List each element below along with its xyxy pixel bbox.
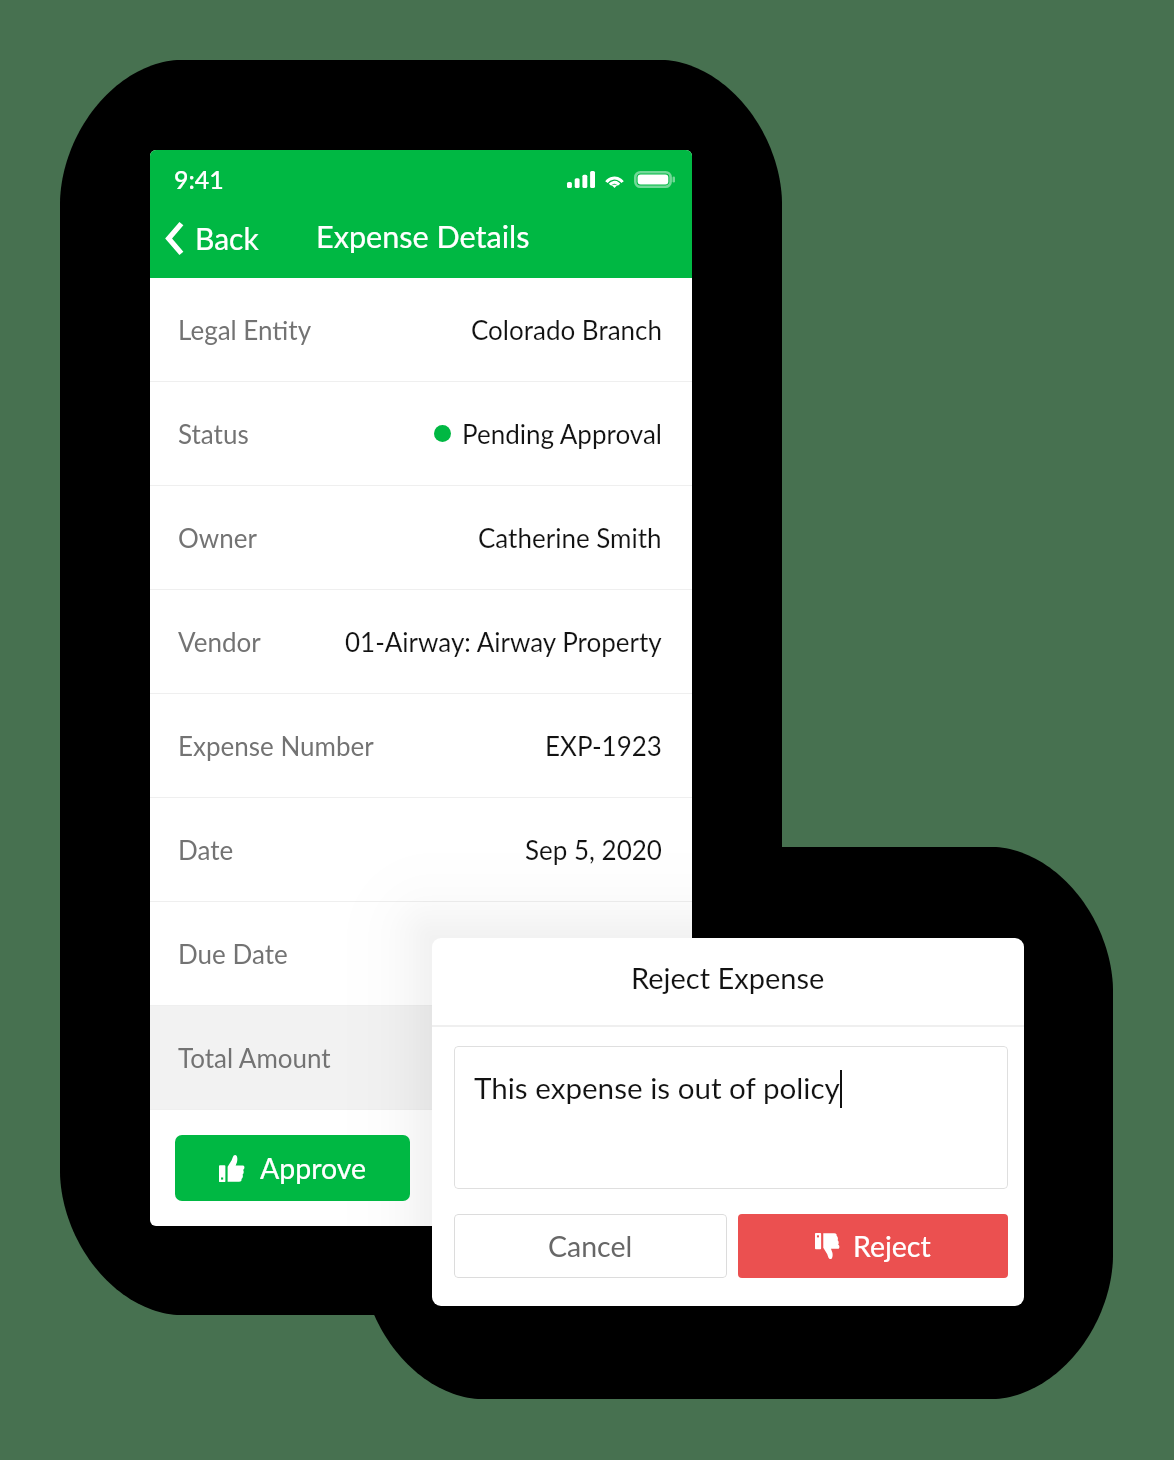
staticText: Total Amount: [178, 1042, 331, 1073]
staticText: Sep 20, 2020: [509, 938, 662, 969]
button[interactable]: This expense is out of policy: [454, 1046, 1008, 1189]
staticText: 9:41: [174, 164, 224, 194]
button[interactable]: Status: [150, 382, 692, 485]
staticText: Status: [178, 418, 249, 449]
staticText: Vendor: [178, 626, 261, 657]
staticText: Catherine Smith: [478, 522, 662, 553]
staticText: Cancel: [548, 1229, 633, 1263]
staticText: EXP-1923: [545, 730, 662, 761]
button[interactable]: Expense Number: [150, 694, 692, 797]
staticText: Back: [195, 220, 259, 256]
button[interactable]: Owner: [150, 486, 692, 589]
button[interactable]: Cancel: [454, 1214, 727, 1278]
staticText: Colorado Branch: [471, 314, 662, 345]
staticText: 01-Airway: Airway Property: [345, 626, 662, 657]
button[interactable]: Approve: [175, 1135, 410, 1201]
button[interactable]: Due Date: [150, 902, 692, 1005]
staticText: Pending Approval: [462, 418, 662, 449]
staticText: $1,200.00: [544, 1042, 662, 1073]
staticText: Due Date: [178, 938, 288, 969]
staticText: This expense is out of policy: [474, 1070, 840, 1106]
staticText: Sep 5, 2020: [525, 834, 662, 865]
staticText: Date: [178, 834, 234, 865]
staticText: Expense Details: [316, 218, 530, 255]
staticText: Legal Entity: [178, 314, 312, 345]
staticText: Reject: [853, 1229, 931, 1263]
staticText: Reject Expense: [631, 960, 825, 995]
button[interactable]: Back: [156, 208, 267, 268]
staticText: Approve: [260, 1151, 367, 1185]
button[interactable]: Legal Entity: [150, 278, 692, 381]
staticText: Expense Number: [178, 730, 374, 761]
button[interactable]: Vendor: [150, 590, 692, 693]
button[interactable]: Total Amount: [150, 1006, 692, 1109]
button[interactable]: Date: [150, 798, 692, 901]
staticText: Owner: [178, 522, 257, 553]
button[interactable]: Reject: [738, 1214, 1008, 1278]
